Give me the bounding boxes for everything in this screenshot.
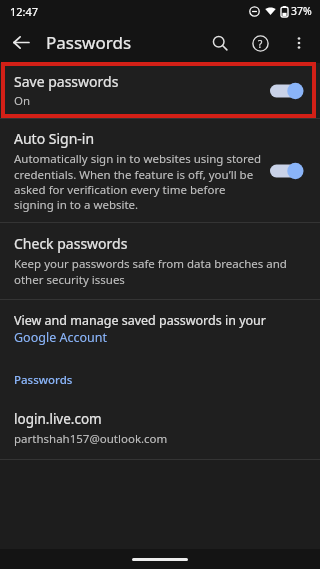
button[interactable]: More options: [280, 24, 318, 62]
button[interactable]: Toggle: [270, 160, 310, 182]
staticText: Passwords: [14, 372, 73, 388]
staticText: Passwords: [46, 31, 132, 54]
staticText: ?: [258, 37, 263, 51]
staticText: Automatically sign in to websites using …: [14, 151, 262, 212]
button[interactable]: View and manage saved passwords in your …: [0, 300, 320, 350]
button[interactable]: Toggle: [270, 80, 310, 102]
button[interactable]: Auto Sign-in: [0, 119, 320, 222]
staticText: 12:47: [10, 4, 39, 19]
staticText: Save passwords: [14, 72, 119, 91]
button[interactable]: Check passwords: [0, 223, 320, 299]
staticText: 37%: [291, 4, 312, 18]
staticText: View and manage saved passwords in your …: [14, 312, 304, 346]
staticText: Keep your passwords safe from data breac…: [14, 256, 302, 287]
button[interactable]: Search: [200, 23, 240, 63]
staticText: Auto Sign-in: [14, 129, 95, 148]
button[interactable]: login.live.com: [0, 406, 320, 459]
staticText: login.live.com: [14, 410, 102, 428]
staticText: parthshah157@outlook.com: [14, 431, 168, 447]
button[interactable]: Back: [0, 22, 42, 63]
staticText: Check passwords: [14, 234, 128, 253]
staticText: On: [14, 93, 31, 109]
button[interactable]: Help: [240, 23, 280, 63]
button[interactable]: Save passwords: [0, 63, 320, 118]
